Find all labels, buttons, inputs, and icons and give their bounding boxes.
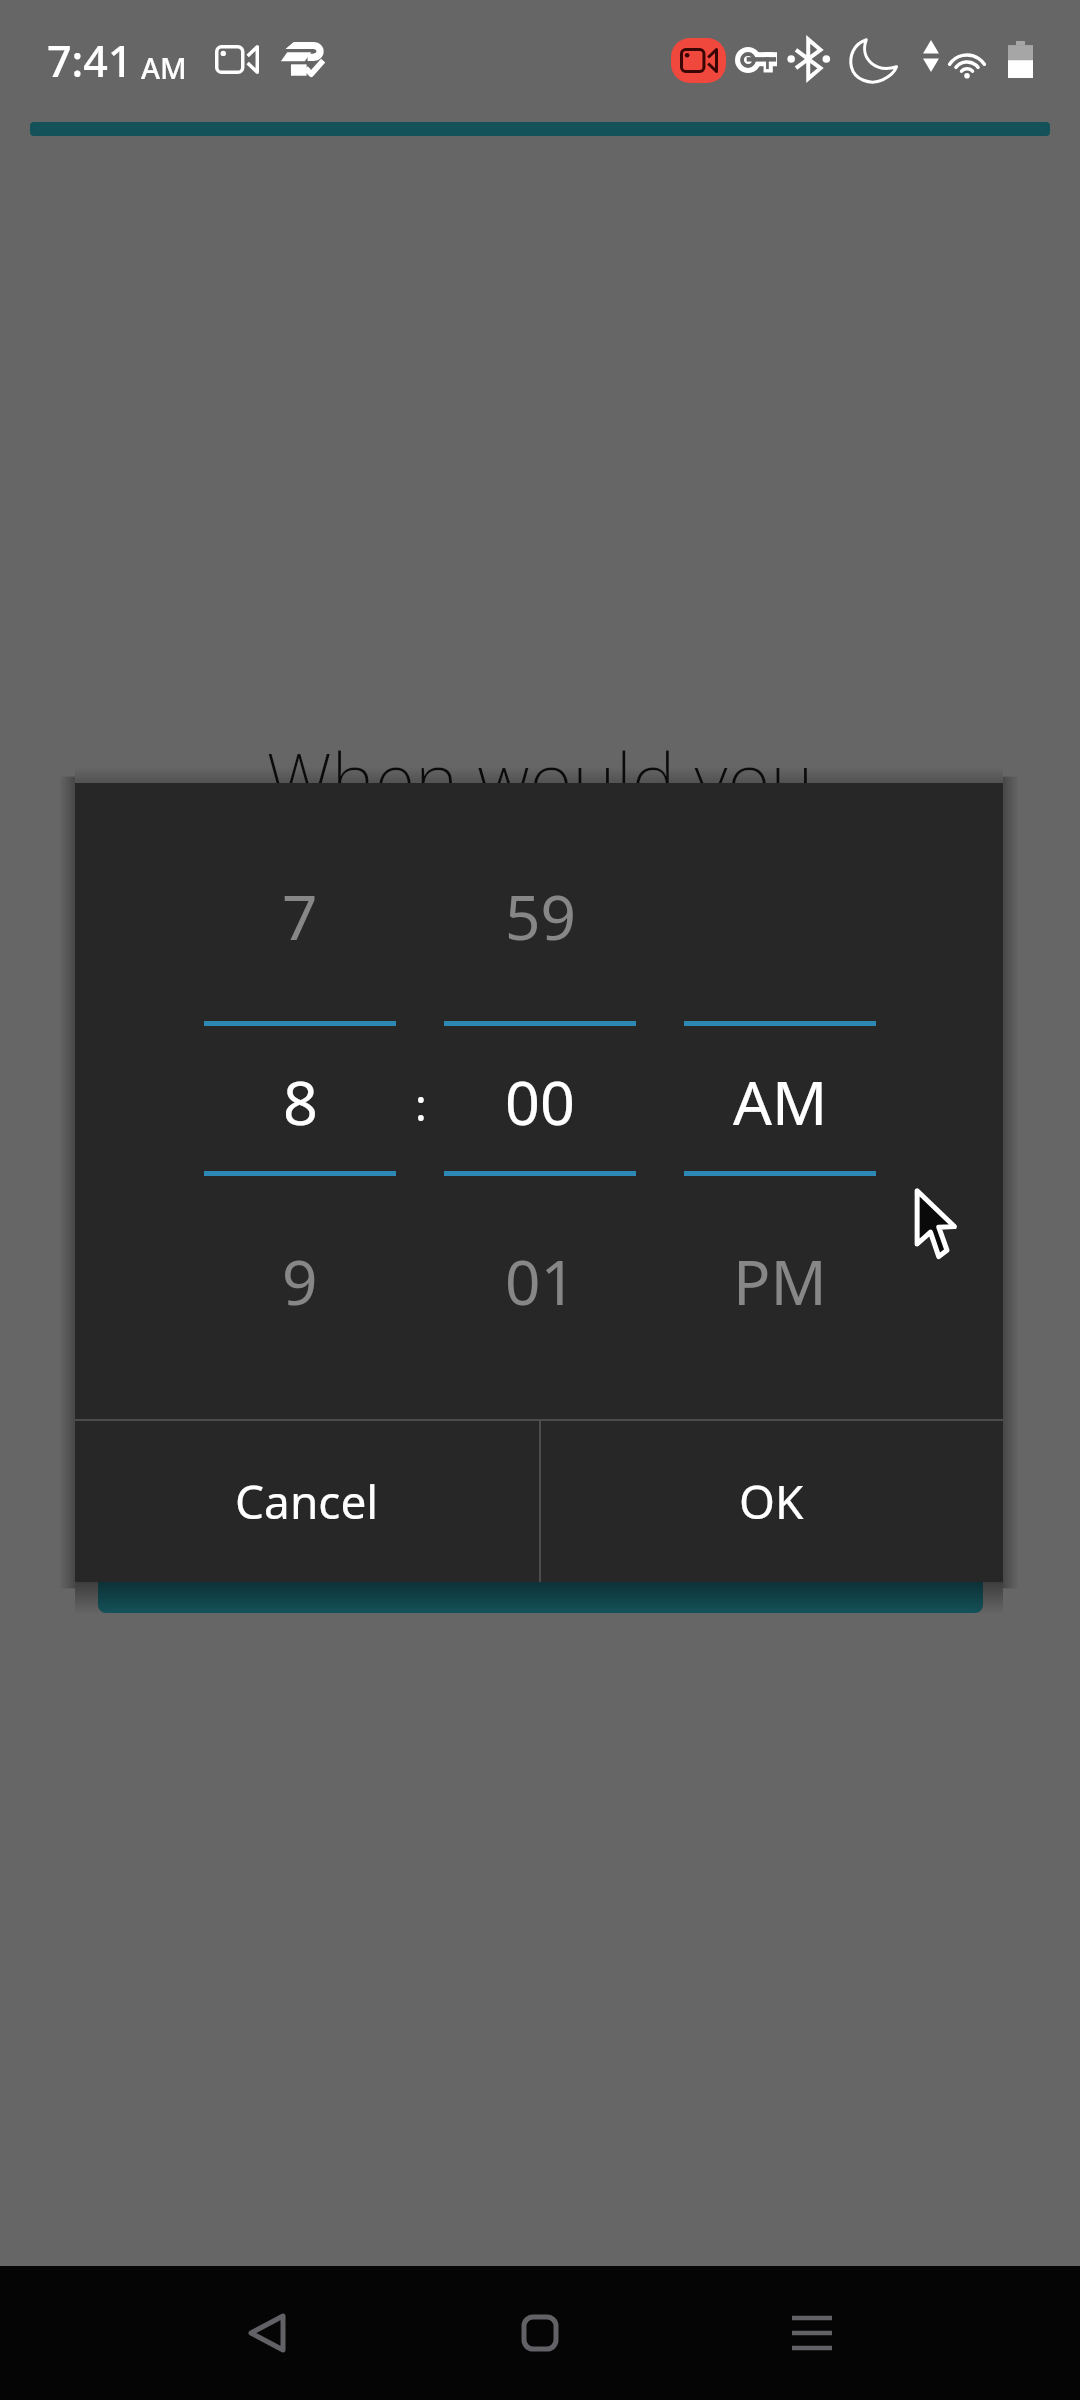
button[interactable]: 9 — [204, 1230, 396, 1332]
button[interactable]: Back — [207, 2273, 327, 2393]
staticText: Cancel — [235, 1470, 379, 1533]
button[interactable] — [98, 1496, 983, 1613]
staticText: PM — [733, 1239, 827, 1323]
button[interactable]: Cancel — [75, 1421, 539, 1582]
staticText: 59 — [505, 874, 576, 958]
staticText: 7 — [282, 874, 318, 958]
button[interactable]: 01 — [444, 1230, 636, 1332]
staticText: 7:41 — [47, 31, 133, 90]
staticText: 01 — [505, 1239, 576, 1323]
staticText: AM — [733, 1060, 828, 1143]
staticText: : — [415, 1074, 427, 1134]
button[interactable]: 7 — [204, 865, 396, 967]
button[interactable]: 59 — [444, 865, 636, 967]
staticText: When would you — [0, 728, 1080, 829]
button[interactable]: AM — [684, 1050, 876, 1152]
button[interactable]: 8 — [204, 1050, 396, 1152]
button[interactable]: PM — [684, 1230, 876, 1332]
button[interactable]: OK — [539, 1421, 1003, 1582]
staticText: 8 — [283, 1060, 318, 1143]
button[interactable]: 00 — [444, 1050, 636, 1152]
staticText: AM — [141, 48, 187, 87]
button[interactable]: Home — [480, 2273, 600, 2393]
staticText: 00 — [505, 1060, 575, 1143]
staticText: 9 — [282, 1239, 318, 1323]
button[interactable]: Recent apps — [752, 2273, 872, 2393]
staticText: OK — [739, 1470, 804, 1533]
